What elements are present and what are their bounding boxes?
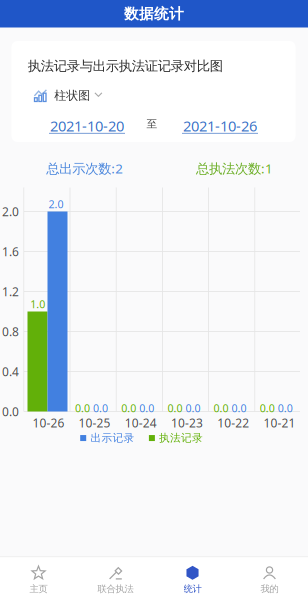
staticText: 1.6 bbox=[2, 243, 19, 259]
staticText: 10-25 bbox=[79, 415, 111, 431]
staticText: 0.0 bbox=[75, 401, 90, 415]
staticText: 0.0 bbox=[2, 403, 19, 419]
button[interactable]: 联合执法 bbox=[77, 557, 154, 600]
staticText: 我的 bbox=[260, 583, 278, 595]
staticText: 执法记录与出示执法证记录对比图 bbox=[28, 58, 223, 74]
staticText: 主页 bbox=[29, 583, 47, 595]
button[interactable]: 柱状图 bbox=[30, 84, 107, 107]
staticText: 10-22 bbox=[217, 415, 249, 431]
button[interactable]: 2021-10-20 bbox=[49, 116, 125, 134]
staticText: 联合执法 bbox=[97, 583, 133, 595]
staticText: 0.4 bbox=[2, 363, 19, 379]
staticText: 0.8 bbox=[2, 323, 19, 339]
button[interactable]: 主页 bbox=[0, 557, 77, 600]
staticText: 总执法次数:1 bbox=[196, 159, 273, 177]
staticText: 10-26 bbox=[32, 415, 64, 431]
staticText: 数据统计 bbox=[124, 5, 184, 23]
staticText: 0.0 bbox=[139, 401, 154, 415]
staticText: 1.0 bbox=[30, 297, 45, 311]
staticText: 执法记录 bbox=[159, 431, 203, 445]
staticText: 2.0 bbox=[48, 197, 63, 211]
staticText: 10-21 bbox=[263, 415, 295, 431]
staticText: 0.0 bbox=[214, 401, 229, 415]
staticText: 0.0 bbox=[278, 401, 293, 415]
button[interactable]: 2021-10-26 bbox=[182, 116, 258, 134]
staticText: 10-23 bbox=[171, 415, 203, 431]
staticText: 0.0 bbox=[260, 401, 275, 415]
staticText: 0.0 bbox=[121, 401, 136, 415]
staticText: 总出示次数:2 bbox=[46, 159, 123, 177]
staticText: 0.0 bbox=[232, 401, 247, 415]
staticText: 统计 bbox=[183, 583, 201, 595]
staticText: 2021-10-20 bbox=[50, 116, 124, 135]
staticText: 0.0 bbox=[185, 401, 200, 415]
button[interactable]: 我的 bbox=[231, 557, 308, 600]
staticText: 柱状图 bbox=[54, 88, 90, 103]
staticText: 1.2 bbox=[2, 283, 19, 299]
staticText: 0.0 bbox=[93, 401, 108, 415]
button[interactable]: 统计 bbox=[154, 557, 231, 600]
staticText: 2021-10-26 bbox=[183, 116, 257, 135]
staticText: 2.0 bbox=[2, 203, 19, 219]
staticText: 10-24 bbox=[125, 415, 157, 431]
staticText: 至 bbox=[146, 117, 157, 131]
staticText: 出示记录 bbox=[90, 431, 134, 445]
staticText: 0.0 bbox=[167, 401, 182, 415]
